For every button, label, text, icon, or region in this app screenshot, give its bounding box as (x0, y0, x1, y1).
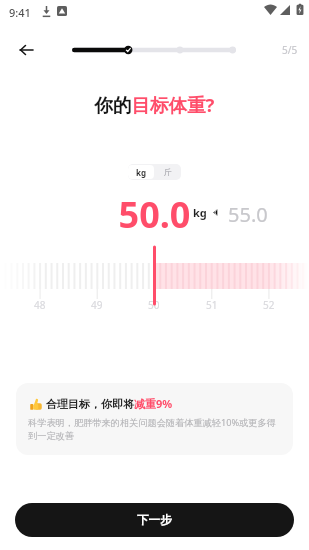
staticText: 49 (91, 298, 103, 312)
staticText: 50 (148, 298, 160, 312)
staticText: 50.0 (0, 190, 309, 234)
staticText: 9:41 (9, 5, 31, 20)
staticText: kg (193, 205, 207, 220)
staticText: 斤 (164, 167, 172, 177)
staticText: 51 (206, 298, 218, 312)
staticText: 48 (34, 298, 46, 312)
button[interactable]: 斤 (154, 165, 181, 179)
button[interactable]: kg (128, 165, 154, 179)
staticText: 5/5 (282, 43, 298, 57)
button[interactable]: Weight ruler, 50.0 kg (0, 243, 309, 313)
staticText: 你的目标体重? (0, 92, 309, 117)
staticText: 下一步 (137, 513, 172, 527)
staticText: 科学表明，肥胖带来的相关问题会随着体重减轻10%或更多得到一定改善 (28, 416, 284, 442)
button[interactable]: 下一步 (15, 503, 294, 537)
button[interactable]: Back (14, 38, 38, 62)
staticText: kg (136, 167, 147, 178)
staticText: 55.0 (228, 201, 268, 228)
staticText: 52 (263, 298, 275, 312)
staticText: 合理目标，你即将减重9% (46, 396, 173, 411)
